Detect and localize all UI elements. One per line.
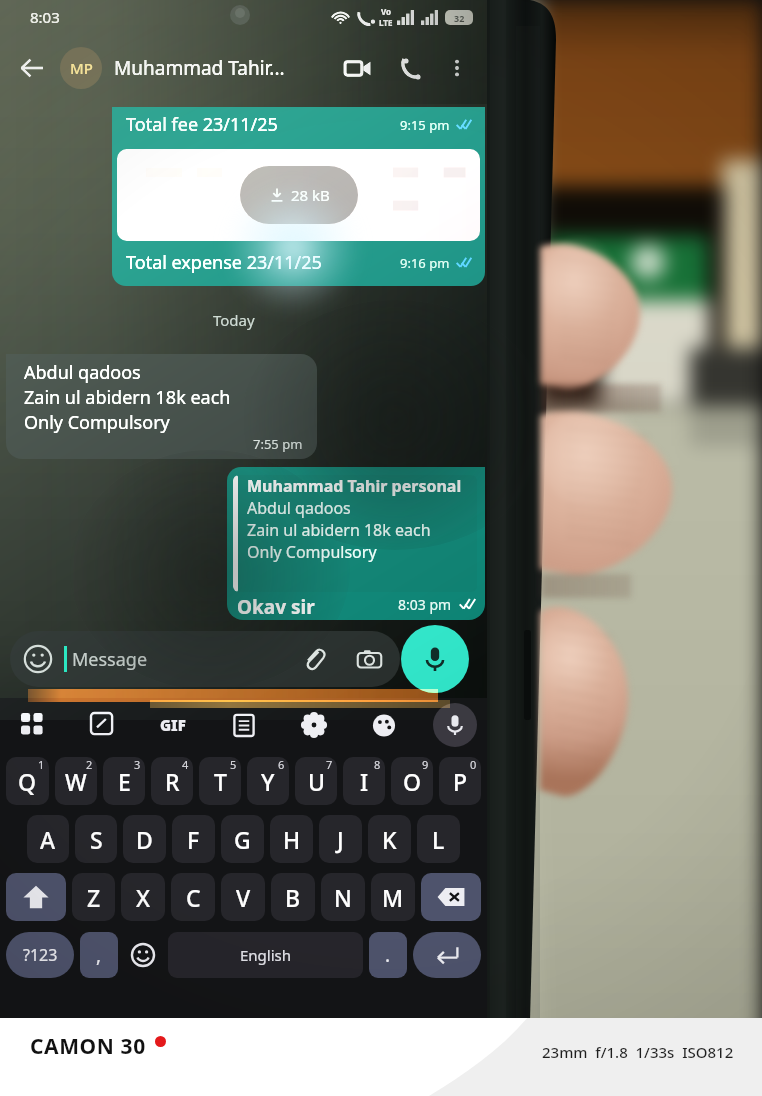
staticText: Okay sir	[237, 594, 315, 614]
staticText: P	[453, 766, 468, 797]
button[interactable]: Total fee 23/11/25	[112, 107, 485, 286]
staticText: English	[240, 945, 292, 965]
staticText: K	[382, 824, 397, 855]
staticText: Y	[261, 766, 275, 797]
button[interactable]: Backspace	[421, 873, 481, 921]
staticText: Message	[72, 647, 148, 672]
button[interactable]: Emoji	[124, 932, 162, 978]
staticText: J	[337, 824, 344, 855]
button[interactable]: F	[172, 815, 215, 863]
staticText: 8	[374, 757, 381, 772]
button[interactable]: G	[221, 815, 264, 863]
staticText: 9	[422, 757, 429, 772]
button[interactable]: L	[417, 815, 460, 863]
button[interactable]: Z	[72, 873, 115, 921]
staticText: L	[432, 824, 445, 855]
staticText: Total expense 23/11/25	[126, 250, 322, 275]
button[interactable]: .	[369, 932, 407, 978]
staticText: 4	[182, 757, 189, 772]
button[interactable]: A	[27, 815, 69, 863]
button[interactable]: D	[123, 815, 166, 863]
button[interactable]: Q	[6, 757, 49, 805]
button[interactable]: U	[295, 757, 337, 805]
staticText: ?123	[23, 944, 58, 966]
button[interactable]: E	[103, 757, 145, 805]
staticText: T	[214, 766, 227, 797]
staticText: G	[234, 824, 251, 855]
staticText: Q	[18, 766, 37, 797]
button[interactable]: Clipboard	[223, 704, 265, 746]
button[interactable]: GIF	[152, 704, 194, 746]
staticText: Total fee 23/11/25	[126, 112, 278, 137]
button[interactable]: N	[321, 873, 365, 921]
button[interactable]: Voice typing	[433, 703, 477, 747]
button[interactable]: C	[171, 873, 215, 921]
button[interactable]: R	[151, 757, 193, 805]
staticText: 7:55 pm	[253, 435, 303, 453]
button[interactable]: J	[319, 815, 362, 863]
button[interactable]: S	[75, 815, 117, 863]
button[interactable]: K	[368, 815, 411, 863]
button[interactable]: Muhammad Tahir personal	[227, 467, 485, 620]
button[interactable]: P	[439, 757, 481, 805]
staticText: 9:16 pm	[400, 254, 450, 272]
staticText: 9:15 pm	[400, 116, 450, 134]
staticText: 5	[230, 757, 237, 772]
button[interactable]: O	[391, 757, 433, 805]
button[interactable]: Video call	[337, 48, 377, 88]
staticText: 8:03	[30, 7, 60, 27]
button[interactable]: W	[55, 757, 97, 805]
button[interactable]: Message	[10, 631, 400, 687]
staticText: Z	[87, 882, 101, 913]
staticText: ,	[96, 942, 102, 968]
button[interactable]: Record voice message	[401, 625, 469, 693]
staticText: Muhammad Tahir personal	[247, 475, 462, 497]
button[interactable]: I	[343, 757, 385, 805]
staticText: Only Compulsory	[24, 410, 170, 435]
button[interactable]: Sticker	[82, 704, 124, 746]
button[interactable]: Voice call	[391, 48, 431, 88]
staticText: Zain ul abidern 18k each	[24, 385, 231, 410]
staticText: Abdul qadoos	[24, 360, 141, 385]
button[interactable]: Enter	[413, 932, 481, 978]
button[interactable]: Y	[247, 757, 289, 805]
staticText: LTE	[379, 17, 393, 28]
staticText: 2	[86, 757, 93, 772]
button[interactable]: X	[121, 873, 165, 921]
button[interactable]: More options	[439, 50, 475, 86]
button[interactable]: Theme	[363, 704, 405, 746]
staticText: F	[187, 824, 200, 855]
button[interactable]: T	[199, 757, 241, 805]
staticText: N	[334, 882, 352, 913]
staticText: Vo	[381, 6, 392, 17]
staticText: I	[360, 766, 369, 797]
button[interactable]: ,	[80, 932, 118, 978]
staticText: U	[308, 766, 325, 797]
button[interactable]: ?123	[6, 932, 74, 978]
staticText: H	[283, 824, 301, 855]
staticText: E	[118, 766, 131, 797]
staticText: M	[382, 882, 404, 913]
staticText: X	[136, 882, 151, 913]
button[interactable]: H	[270, 815, 313, 863]
staticText: 6	[278, 757, 285, 772]
button[interactable]: English	[168, 932, 363, 978]
staticText: B	[285, 882, 301, 913]
staticText: Today	[213, 310, 255, 330]
staticText: D	[136, 824, 153, 855]
staticText: 32	[454, 12, 465, 24]
staticText: S	[90, 824, 103, 855]
button[interactable]: Download document	[240, 166, 358, 224]
button[interactable]: Abdul qadoos	[6, 354, 317, 459]
button[interactable]: M	[371, 873, 415, 921]
button[interactable]: Shift	[6, 873, 66, 921]
button[interactable]: Settings	[293, 704, 335, 746]
button[interactable]: V	[221, 873, 265, 921]
staticText: Abdul qadoos	[247, 497, 351, 519]
button[interactable]: B	[271, 873, 315, 921]
button[interactable]: Profile photo	[60, 47, 102, 89]
staticText: Muhammad Tahir...	[114, 55, 337, 81]
button[interactable]: Back	[10, 46, 54, 90]
button[interactable]: Apps	[12, 704, 54, 746]
staticText: CAMON 30	[30, 1032, 146, 1061]
